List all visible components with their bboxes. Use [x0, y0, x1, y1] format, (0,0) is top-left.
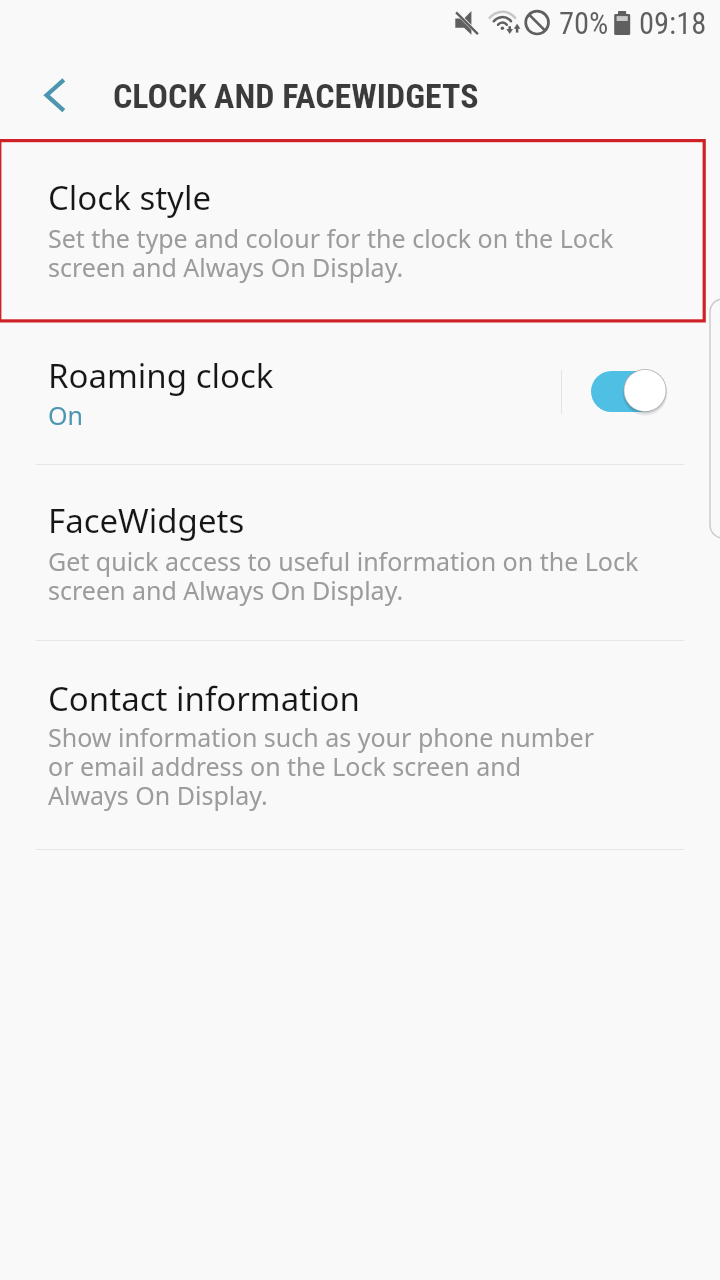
staticText: Set the type and colour for the clock on…: [48, 221, 614, 284]
button[interactable]: Roaming clock: [0, 325, 720, 463]
button[interactable]: FaceWidgets: [0, 466, 720, 639]
staticText: 09:18: [639, 6, 707, 42]
staticText: Show information such as your phone numb…: [48, 720, 594, 812]
staticText: FaceWidgets: [48, 498, 245, 543]
button[interactable]: Navigate up: [17, 66, 75, 124]
staticText: CLOCK AND FACEWIDGETS: [113, 76, 479, 116]
staticText: 70%: [559, 6, 609, 42]
staticText: Contact information: [48, 676, 360, 721]
staticText: On: [48, 398, 83, 432]
staticText: Clock style: [48, 175, 212, 220]
button[interactable]: Contact information: [0, 642, 720, 848]
staticText: Roaming clock: [48, 353, 274, 398]
staticText: Get quick access to useful information o…: [48, 544, 639, 607]
button[interactable]: Roaming clock, on: [591, 370, 666, 414]
button[interactable]: Clock style: [0, 142, 720, 320]
